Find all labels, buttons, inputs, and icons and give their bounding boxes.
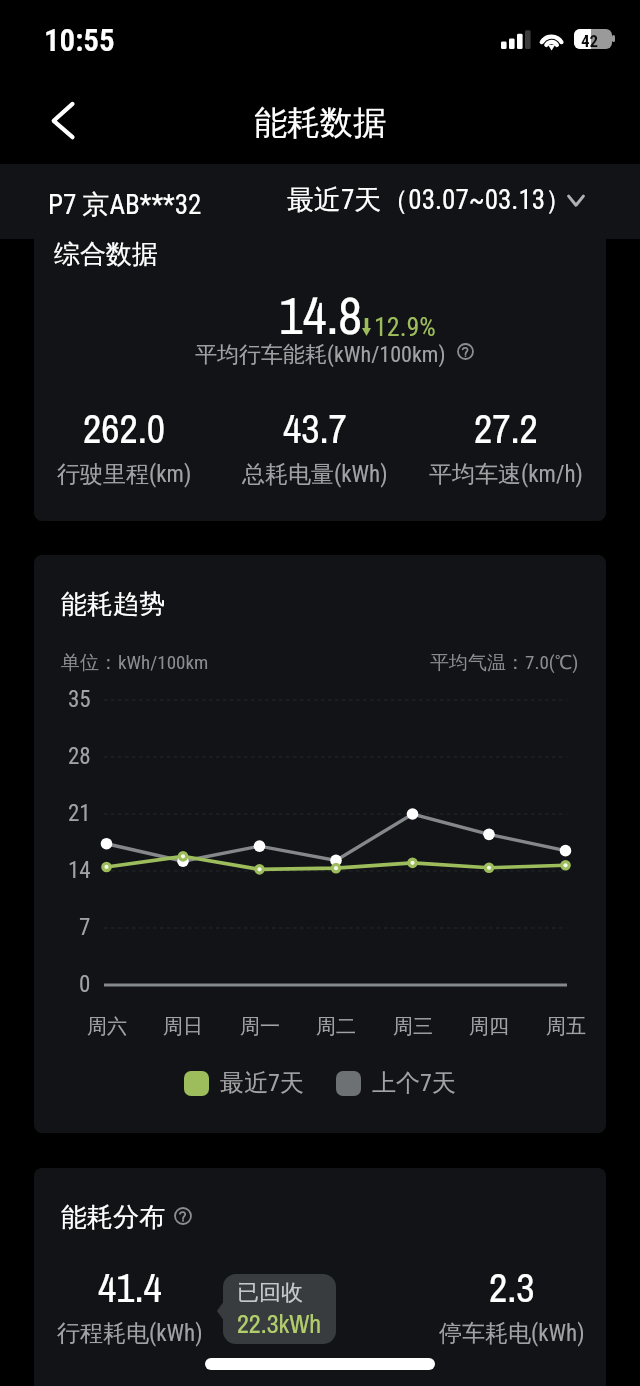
staticText: 平均行车能耗(kWh/100km) <box>195 341 446 369</box>
staticText: 2.3 <box>489 1261 535 1315</box>
staticText: 41.4 <box>98 1261 162 1315</box>
staticText: 停车耗电(kWh) <box>439 1319 585 1348</box>
staticText: 7 <box>79 914 91 941</box>
staticText: 周日 <box>163 1014 203 1039</box>
staticText: 能耗数据 <box>254 102 386 144</box>
button[interactable]: About energy distribution <box>174 1207 192 1225</box>
staticText: 上个7天 <box>372 1068 456 1098</box>
staticText: 12.9% <box>374 312 436 342</box>
staticText: 平均气温：7.0(℃) <box>430 651 579 675</box>
button[interactable]: 最近7天（03.07~03.13） <box>280 170 600 232</box>
button[interactable]: 综合数据 <box>34 239 606 521</box>
staticText: 42 <box>581 31 599 51</box>
staticText: 周四 <box>469 1014 509 1039</box>
button[interactable]: Back <box>32 90 94 152</box>
staticText: 0 <box>79 971 91 998</box>
button[interactable]: 43.7 <box>219 402 410 489</box>
staticText: 周六 <box>87 1014 127 1039</box>
staticText: 能耗趋势 <box>61 588 165 621</box>
staticText: 行驶里程(km) <box>57 460 192 489</box>
staticText: 已回收 <box>237 1279 303 1307</box>
staticText: 行程耗电(kWh) <box>57 1319 203 1348</box>
staticText: 周三 <box>393 1014 433 1039</box>
staticText: 总耗电量(kWh) <box>242 460 388 489</box>
staticText: 27.2 <box>474 402 538 456</box>
staticText: 14.8 <box>279 280 362 350</box>
button[interactable]: 27.2 <box>410 402 601 489</box>
staticText: 22.3kWh <box>237 1306 322 1341</box>
staticText: 262.0 <box>83 402 166 456</box>
staticText: 周一 <box>240 1014 280 1039</box>
staticText: 最近7天 <box>220 1068 304 1098</box>
button[interactable]: 262.0 <box>34 402 219 489</box>
staticText: 28 <box>68 743 91 770</box>
staticText: 10:55 <box>44 22 115 58</box>
staticText: 21 <box>68 800 91 827</box>
button[interactable]: 2.3 <box>416 1261 606 1348</box>
staticText: 综合数据 <box>54 239 158 271</box>
staticText: 35 <box>68 686 91 713</box>
staticText: 能耗分布 <box>61 1201 165 1234</box>
staticText: 周五 <box>546 1014 586 1039</box>
staticText: 14 <box>68 857 91 884</box>
staticText: P7 京AB***32 <box>48 188 202 222</box>
staticText: 43.7 <box>283 402 347 456</box>
button[interactable]: 41.4 <box>35 1261 225 1348</box>
staticText: 最近7天（03.07~03.13） <box>287 183 573 217</box>
staticText: 周二 <box>316 1014 356 1039</box>
staticText: 单位：kWh/100km <box>61 651 209 675</box>
staticText: 平均车速(km/h) <box>429 460 583 489</box>
